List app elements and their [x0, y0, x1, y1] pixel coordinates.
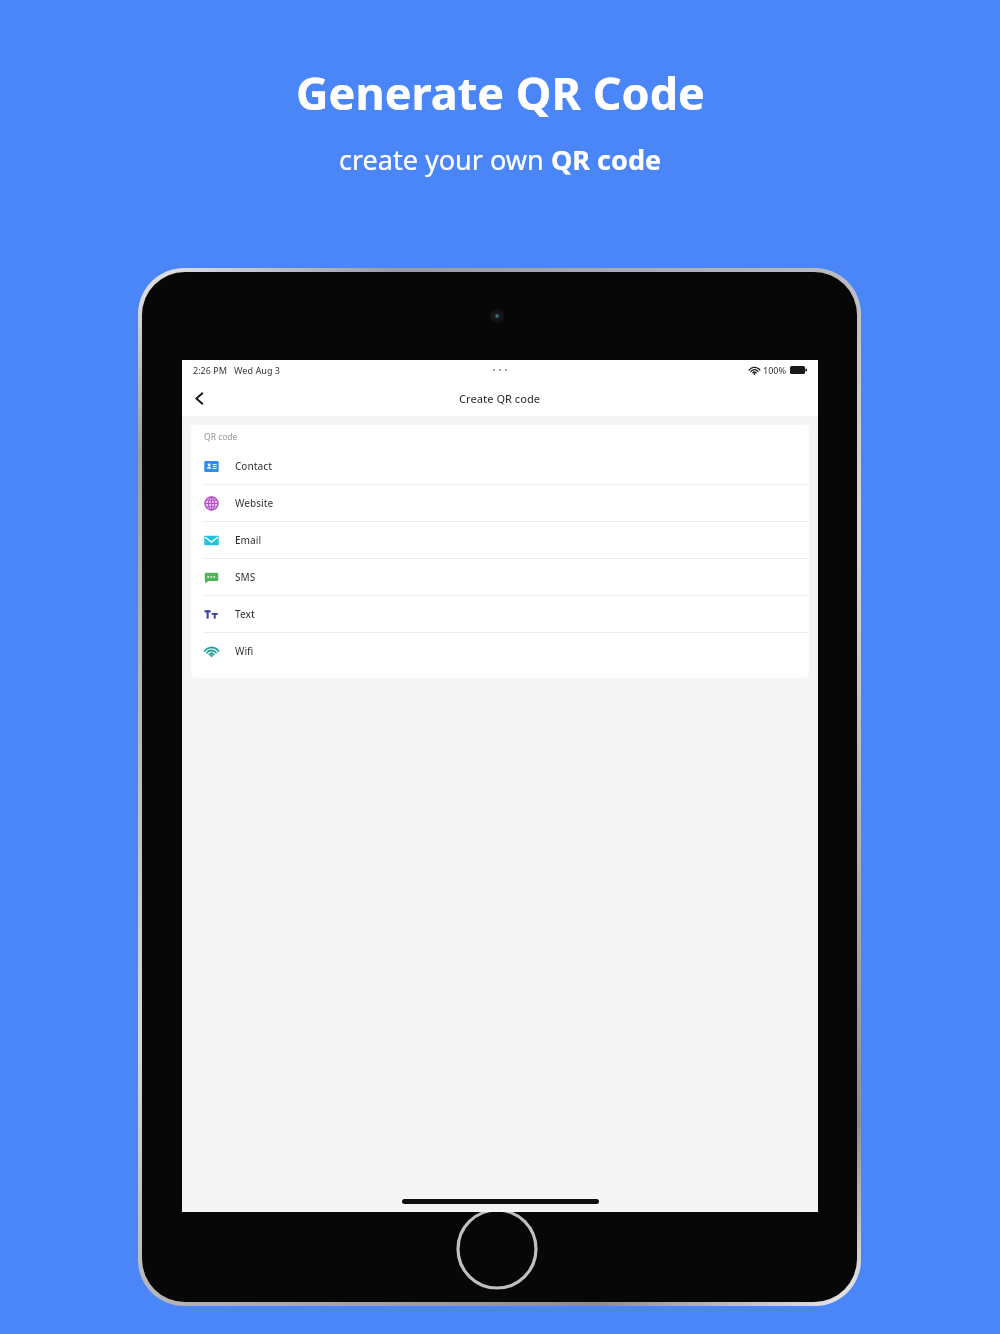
- staticText: SMS: [235, 570, 256, 584]
- button[interactable]: Text: [191, 596, 809, 632]
- staticText: 100%: [763, 364, 787, 376]
- staticText: Wifi: [235, 644, 254, 658]
- button[interactable]: SMS: [191, 559, 809, 595]
- staticText: QR code: [204, 431, 238, 443]
- staticText: QR code: [551, 141, 662, 178]
- button[interactable]: Website: [191, 485, 809, 521]
- staticText: Website: [235, 496, 274, 510]
- staticText: create your own: [339, 141, 551, 178]
- button[interactable]: Email: [191, 522, 809, 558]
- staticText: Wed Aug 3: [234, 364, 280, 376]
- staticText: Text: [235, 607, 255, 621]
- staticText: Generate QR Code: [296, 62, 705, 123]
- staticText: Contact: [235, 459, 273, 473]
- button[interactable]: Contact: [191, 448, 809, 484]
- button[interactable]: Back: [182, 381, 216, 415]
- staticText: Create QR code: [459, 391, 541, 406]
- staticText: Email: [235, 533, 262, 547]
- button[interactable]: Wifi: [191, 633, 809, 669]
- staticText: 2:26 PM: [193, 364, 227, 376]
